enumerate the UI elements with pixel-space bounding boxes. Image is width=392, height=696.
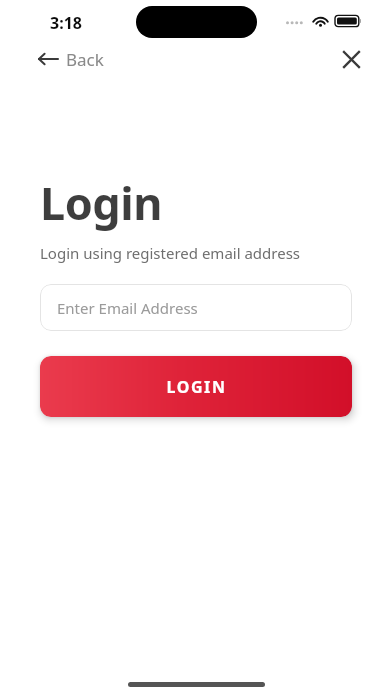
- staticText: Back: [66, 48, 104, 71]
- button[interactable]: Back: [32, 42, 110, 76]
- button[interactable]: Enter Email Address: [40, 284, 352, 331]
- staticText: Enter Email Address: [57, 298, 198, 318]
- staticText: Login using registered email address: [40, 243, 301, 263]
- staticText: LOGIN: [166, 376, 227, 398]
- button[interactable]: Close: [334, 42, 368, 76]
- button[interactable]: LOGIN: [40, 356, 352, 417]
- staticText: Login: [40, 172, 162, 233]
- staticText: 3:18: [50, 12, 82, 34]
